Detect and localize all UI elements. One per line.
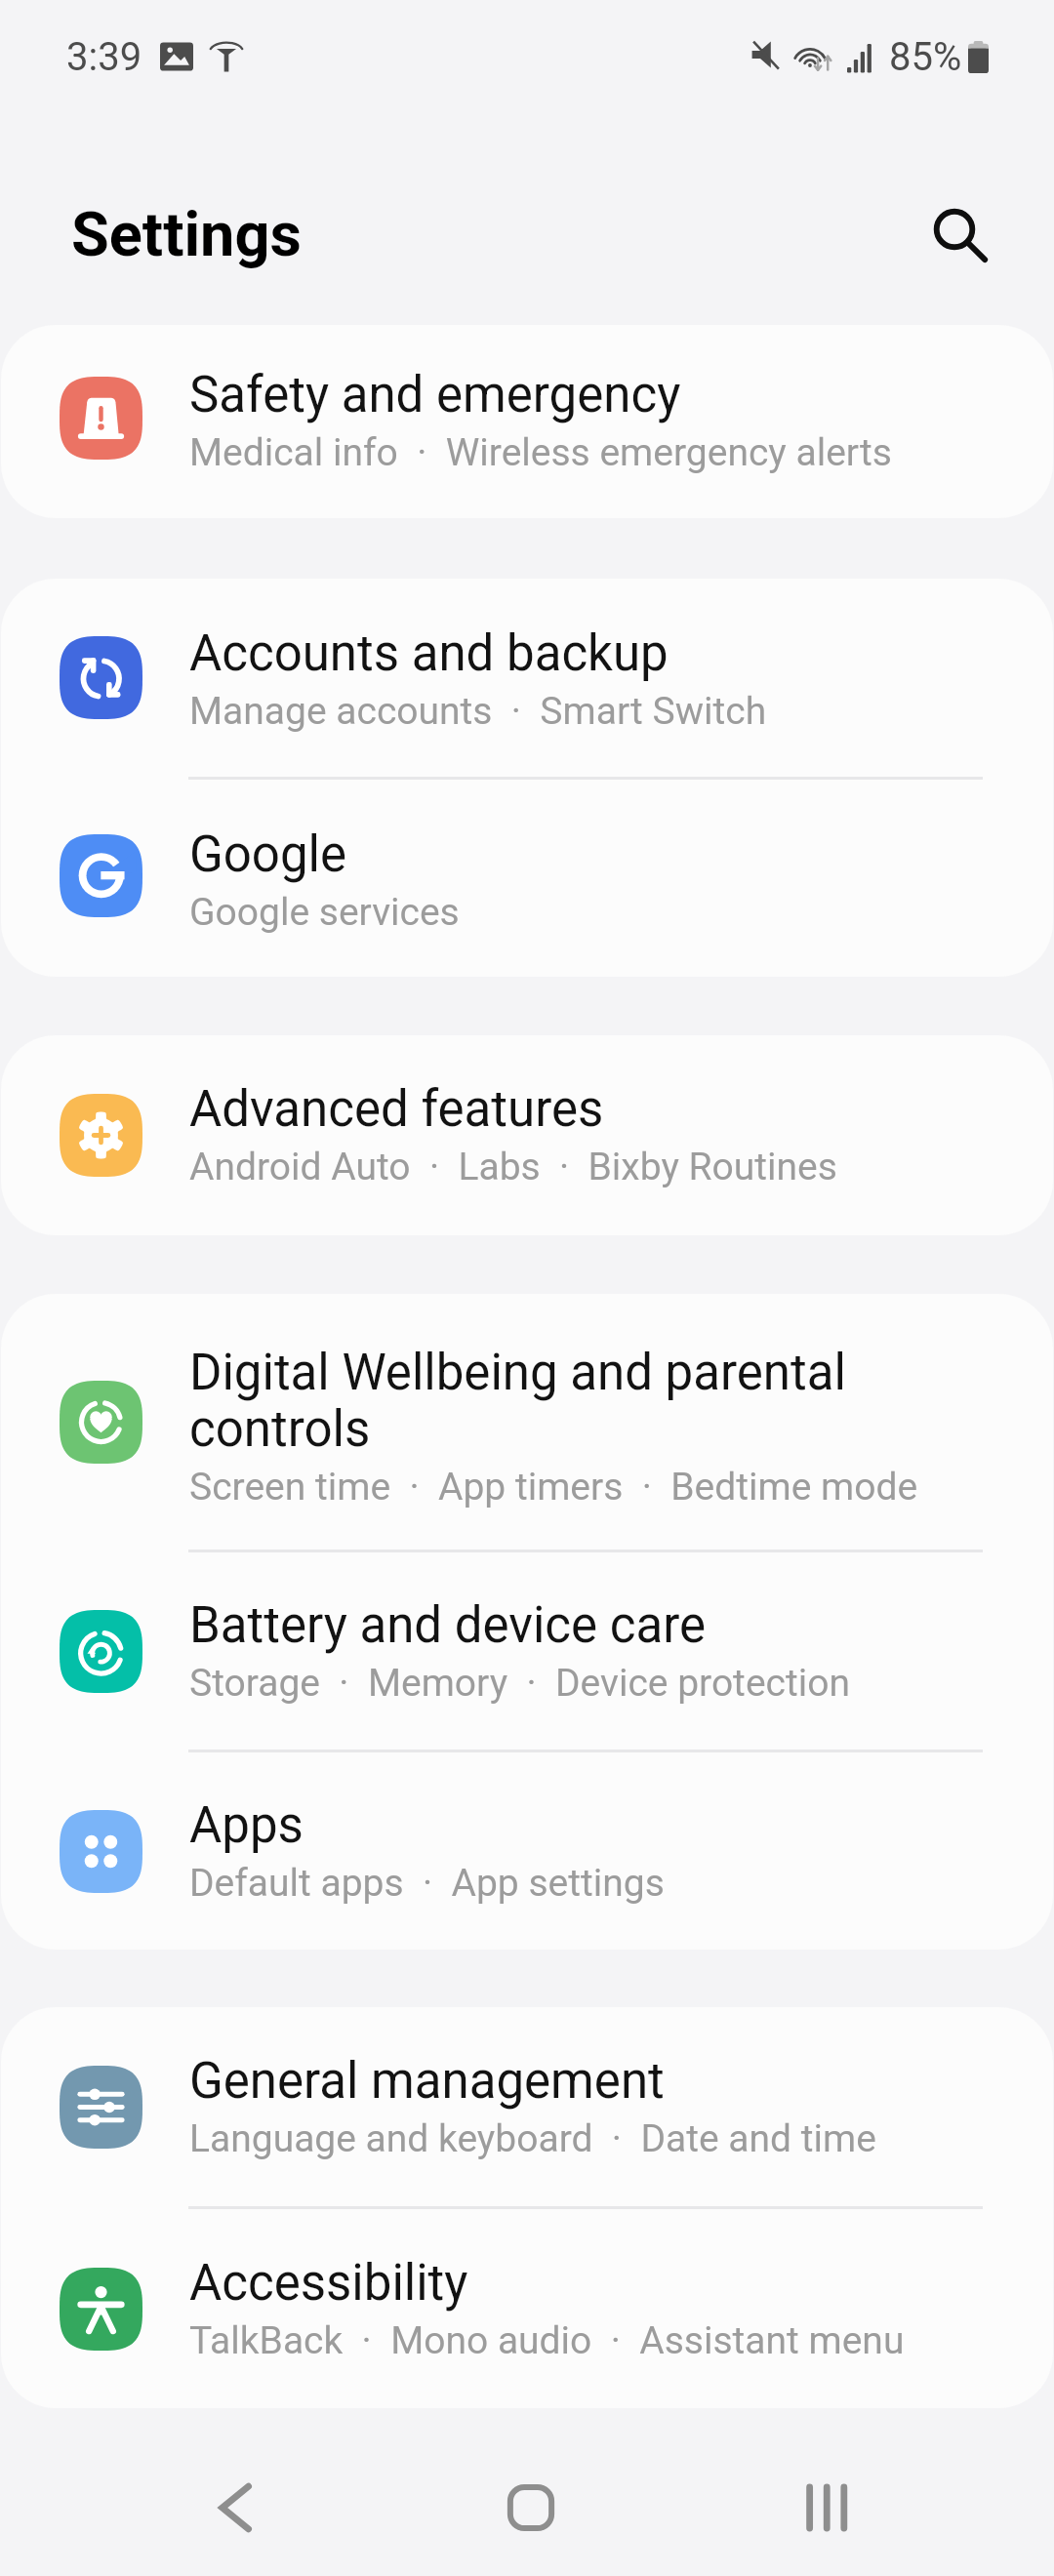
button[interactable]: Search <box>912 186 1009 284</box>
staticText: 85% <box>889 34 962 80</box>
staticText: Settings <box>71 199 302 271</box>
staticText: Apps <box>189 1797 304 1854</box>
button[interactable]: Back <box>157 2438 313 2576</box>
button[interactable]: Safety and emergency <box>1 325 1053 518</box>
staticText: Default apps · App settings <box>189 1859 665 1906</box>
staticText: Accessibility <box>189 2255 468 2312</box>
staticText: Android Auto · Labs · Bixby Routines <box>189 1143 837 1189</box>
staticText: General management <box>189 2053 665 2110</box>
button[interactable]: Apps <box>1 1752 1053 1950</box>
button[interactable]: Google <box>1 780 1053 977</box>
button[interactable]: Digital Wellbeing and parental controls <box>1 1294 1053 1552</box>
staticText: Google services <box>189 888 460 935</box>
staticText: Medical info · Wireless emergency alerts <box>189 428 892 475</box>
button[interactable]: Recent apps <box>749 2438 905 2576</box>
button[interactable]: Accessibility <box>1 2209 1053 2408</box>
staticText: Digital Wellbeing and parental controls <box>189 1345 846 1458</box>
staticText: Battery and device care <box>189 1597 707 1654</box>
button[interactable]: Advanced features <box>1 1035 1053 1235</box>
staticText: Advanced features <box>189 1081 604 1138</box>
button[interactable]: Home <box>453 2438 609 2576</box>
staticText: TalkBack · Mono audio · Assistant menu <box>189 2316 905 2363</box>
staticText: Manage accounts · Smart Switch <box>189 687 767 734</box>
button[interactable]: Accounts and backup <box>1 579 1053 780</box>
staticText: Storage · Memory · Device protection <box>189 1659 850 1706</box>
staticText: Language and keyboard · Date and time <box>189 2114 876 2161</box>
staticText: Safety and emergency <box>189 367 681 423</box>
button[interactable]: Battery and device care <box>1 1552 1053 1752</box>
button[interactable]: General management <box>1 2007 1053 2209</box>
staticText: Accounts and backup <box>189 625 669 682</box>
staticText: 3:39 <box>66 34 142 80</box>
staticText: Google <box>189 826 346 883</box>
staticText: Screen time · App timers · Bedtime mode <box>189 1463 918 1509</box>
